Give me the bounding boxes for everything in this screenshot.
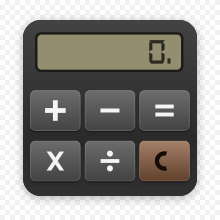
button[interactable]: Divide [85,141,135,181]
button[interactable]: Equals [140,90,189,130]
button[interactable]: Multiply [30,141,80,181]
button[interactable]: Plus [30,90,80,130]
button[interactable]: Minus [85,90,135,130]
button[interactable]: Clear [140,141,189,181]
